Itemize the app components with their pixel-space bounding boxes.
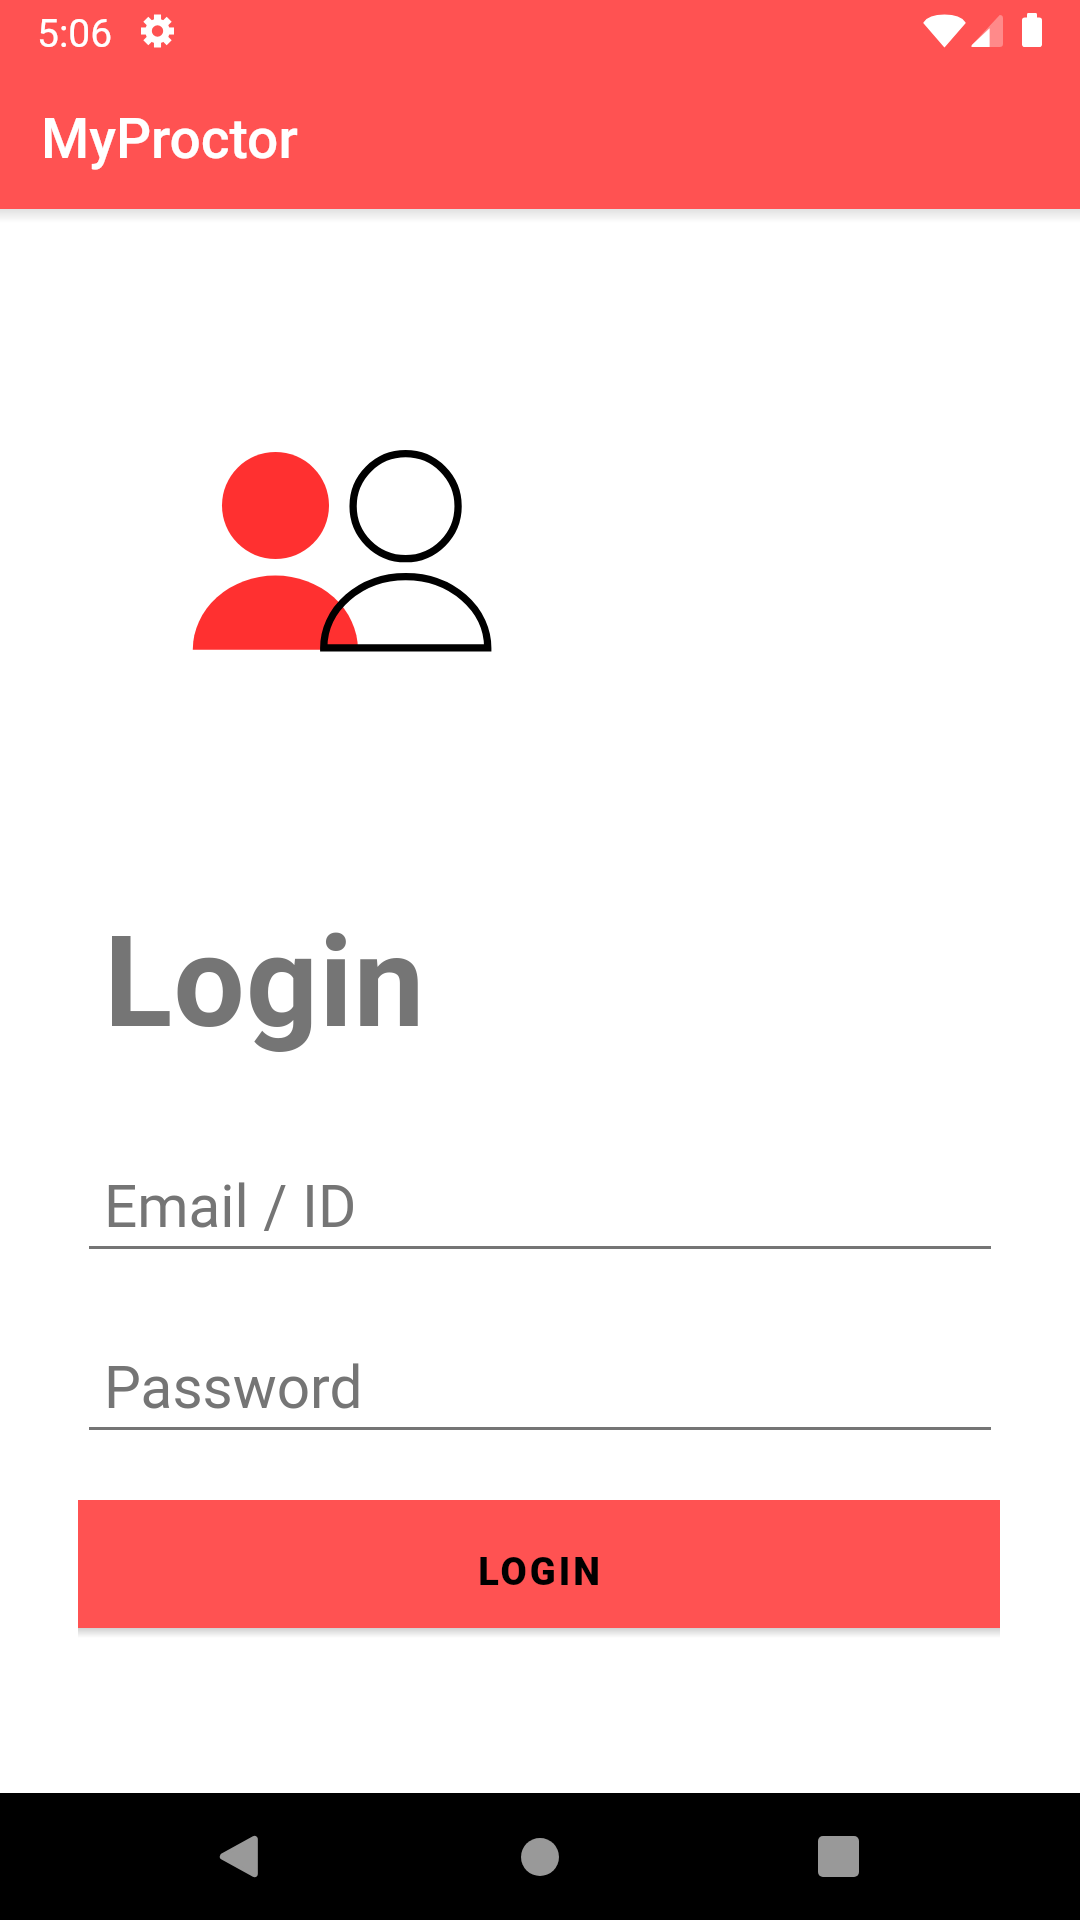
- button[interactable]: Recent apps: [748, 1793, 928, 1920]
- staticText: 5:06: [37, 11, 113, 57]
- button[interactable]: Email / ID: [89, 1169, 991, 1249]
- button[interactable]: LOGIN: [78, 1500, 1000, 1628]
- staticText: MyProctor: [41, 107, 298, 171]
- button[interactable]: Back: [148, 1793, 328, 1920]
- button[interactable]: Home: [450, 1793, 630, 1920]
- staticText: LOGIN: [478, 1550, 603, 1595]
- staticText: Password: [104, 1354, 363, 1423]
- staticText: Email / ID: [104, 1173, 357, 1242]
- button[interactable]: Settings: [141, 14, 174, 48]
- staticText: Login: [104, 909, 426, 1057]
- button[interactable]: Password: [89, 1350, 991, 1430]
